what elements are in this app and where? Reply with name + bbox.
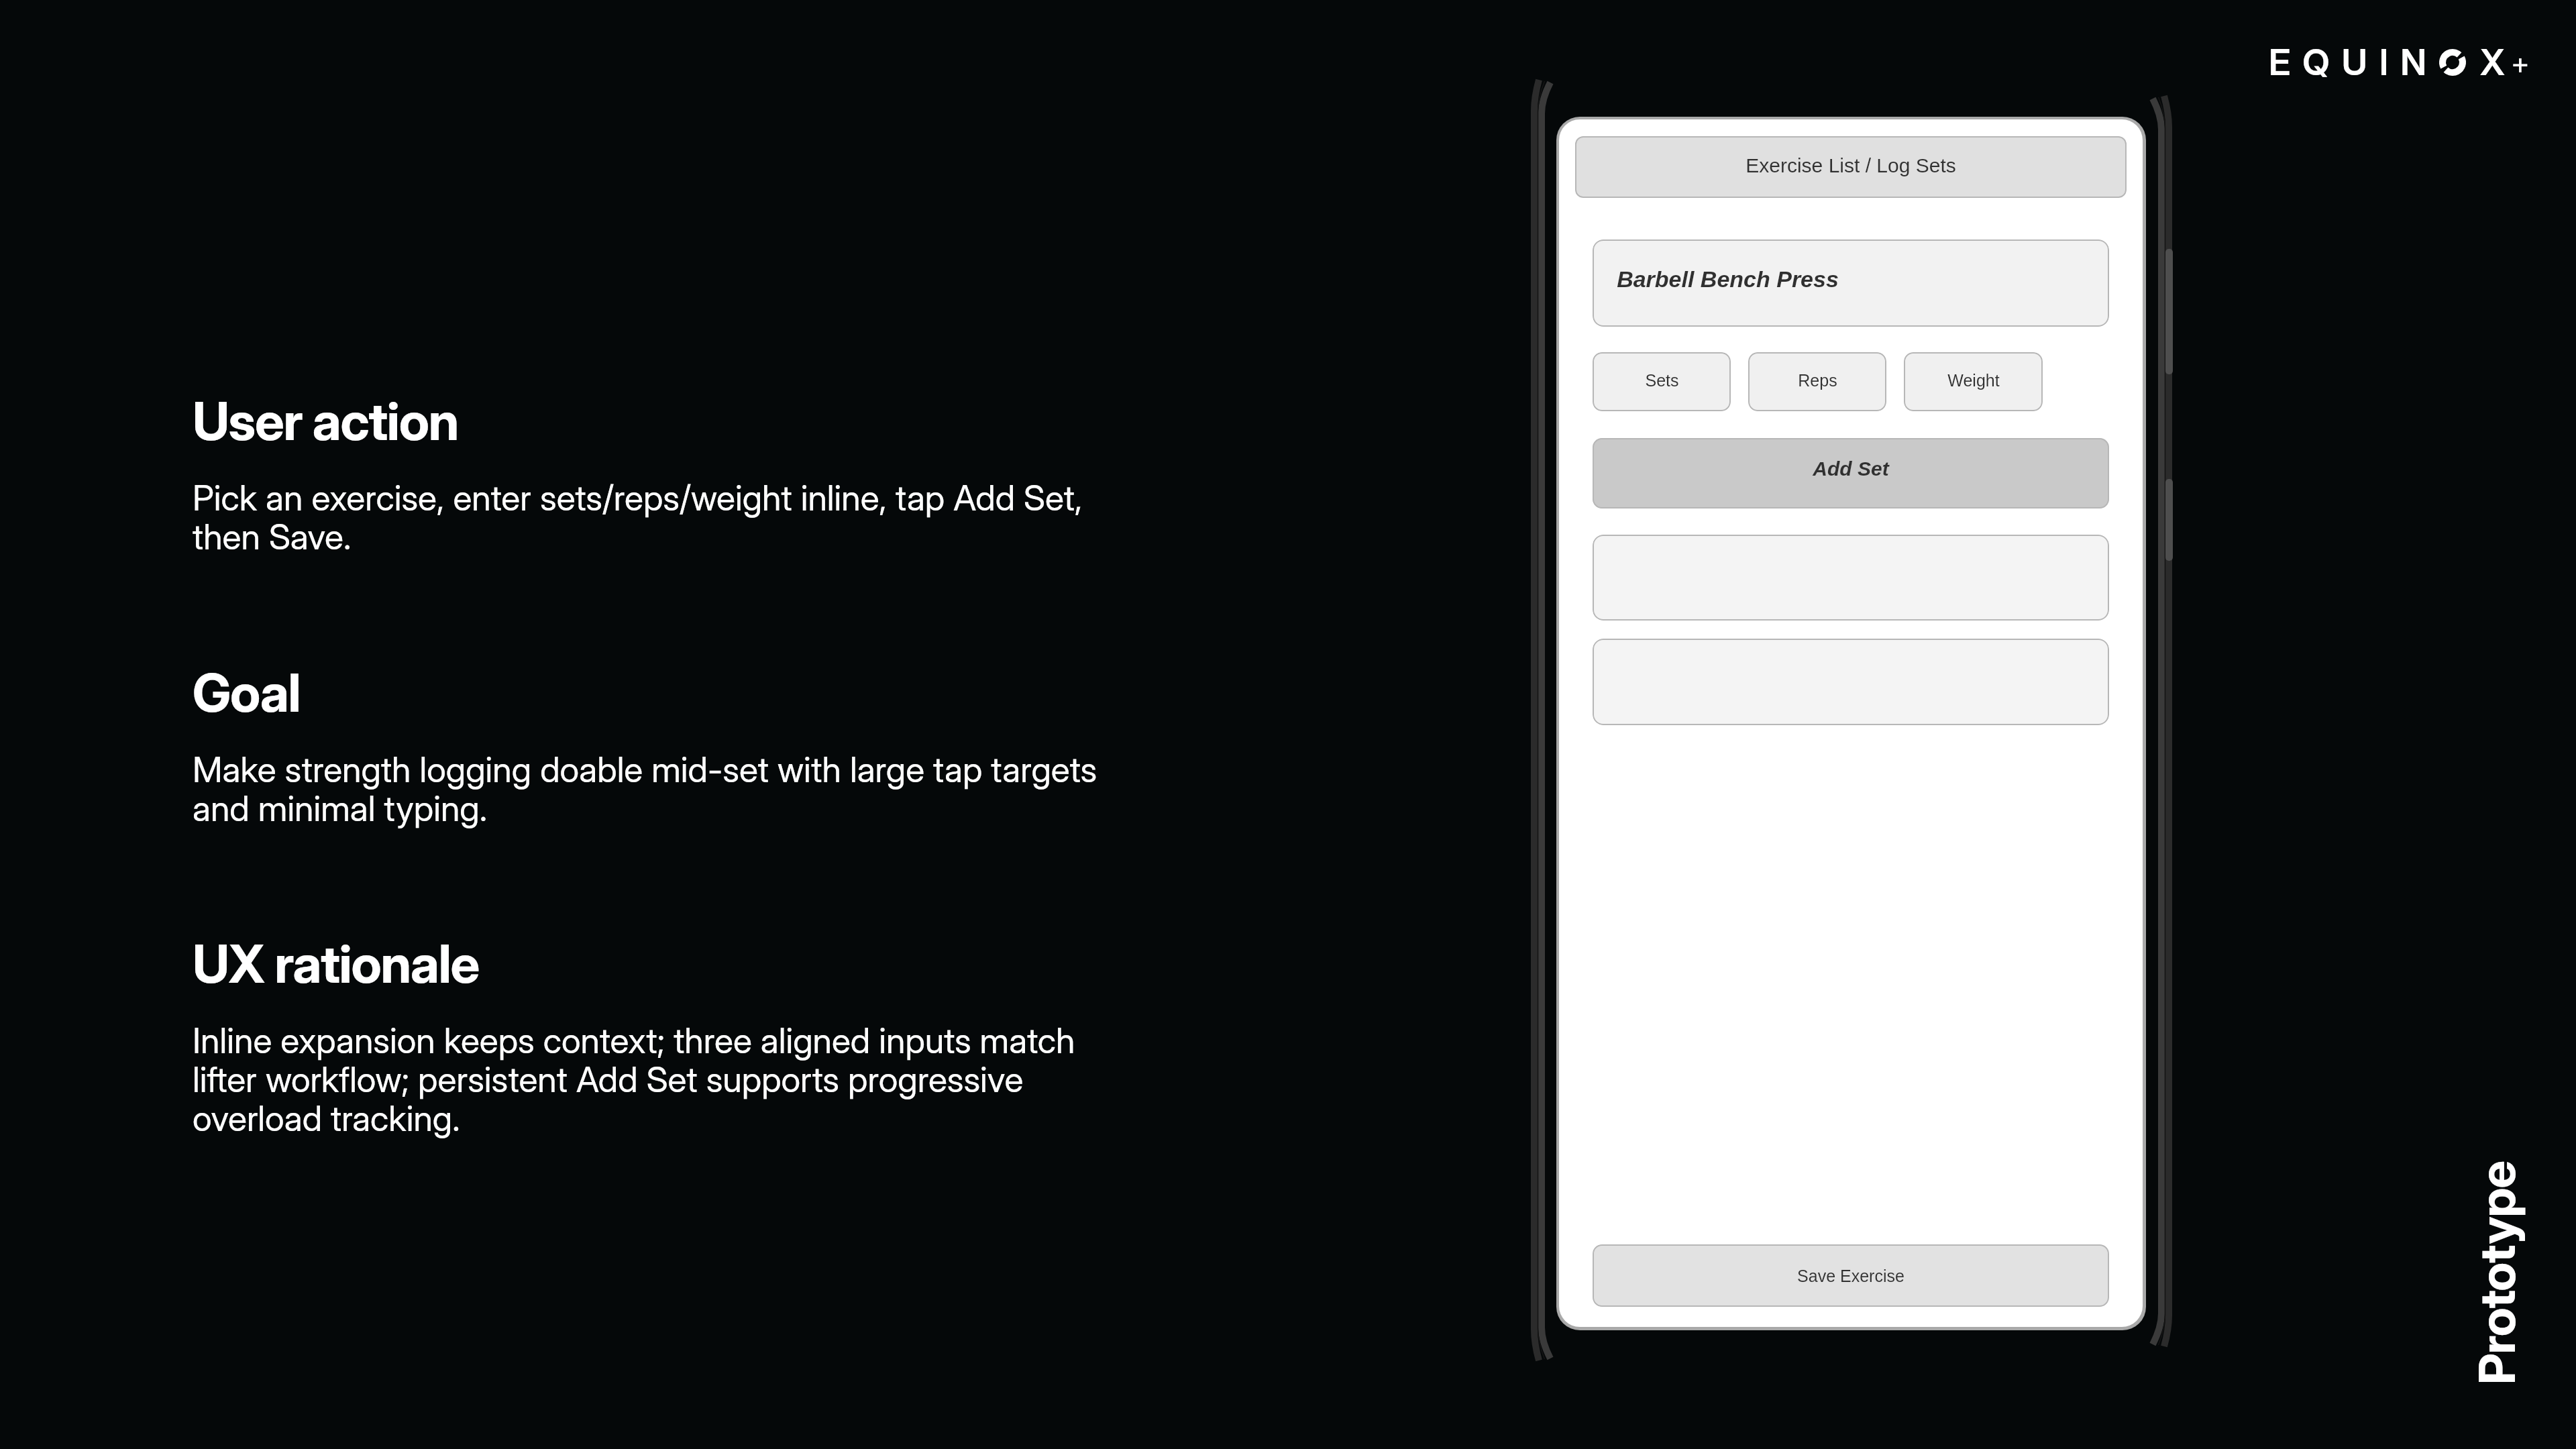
button[interactable] (1593, 639, 2109, 725)
staticText: Add Set (1813, 458, 1889, 480)
button[interactable]: Reps (1748, 352, 1886, 411)
button[interactable]: Power button (2165, 479, 2173, 561)
button[interactable]: Barbell Bench Press (1593, 239, 2109, 327)
button[interactable]: EQUINOX+ home (2269, 40, 2530, 84)
staticText: Inline expansion keeps context; three al… (193, 1020, 1132, 1140)
button[interactable] (1593, 535, 2109, 621)
staticText: Pick an exercise, enter sets/reps/weight… (193, 477, 1132, 558)
staticText: User action (193, 389, 459, 452)
button[interactable]: Add Set (1593, 438, 2109, 508)
staticText: Exercise List / Log Sets (1746, 154, 1956, 177)
staticText: Goal (193, 661, 301, 724)
button[interactable]: Sets (1593, 352, 1731, 411)
staticText: + (2511, 45, 2530, 80)
staticText: Weight (1947, 371, 2000, 390)
staticText: Reps (1798, 371, 1837, 390)
staticText: EQUIN (2269, 40, 2439, 84)
staticText: Prototype (2467, 1161, 2527, 1385)
button[interactable]: Save Exercise (1593, 1244, 2109, 1307)
staticText: Barbell Bench Press (1617, 266, 1839, 292)
staticText: Sets (1645, 371, 1679, 390)
button[interactable]: Weight (1904, 352, 2043, 411)
staticText: X (2480, 40, 2505, 84)
button[interactable]: Exercise List / Log Sets (1575, 136, 2127, 198)
staticText: Make strength logging doable mid-set wit… (193, 749, 1132, 830)
staticText: UX rationale (193, 932, 479, 995)
button[interactable]: Volume button (2165, 249, 2173, 374)
staticText: Save Exercise (1797, 1267, 1904, 1285)
